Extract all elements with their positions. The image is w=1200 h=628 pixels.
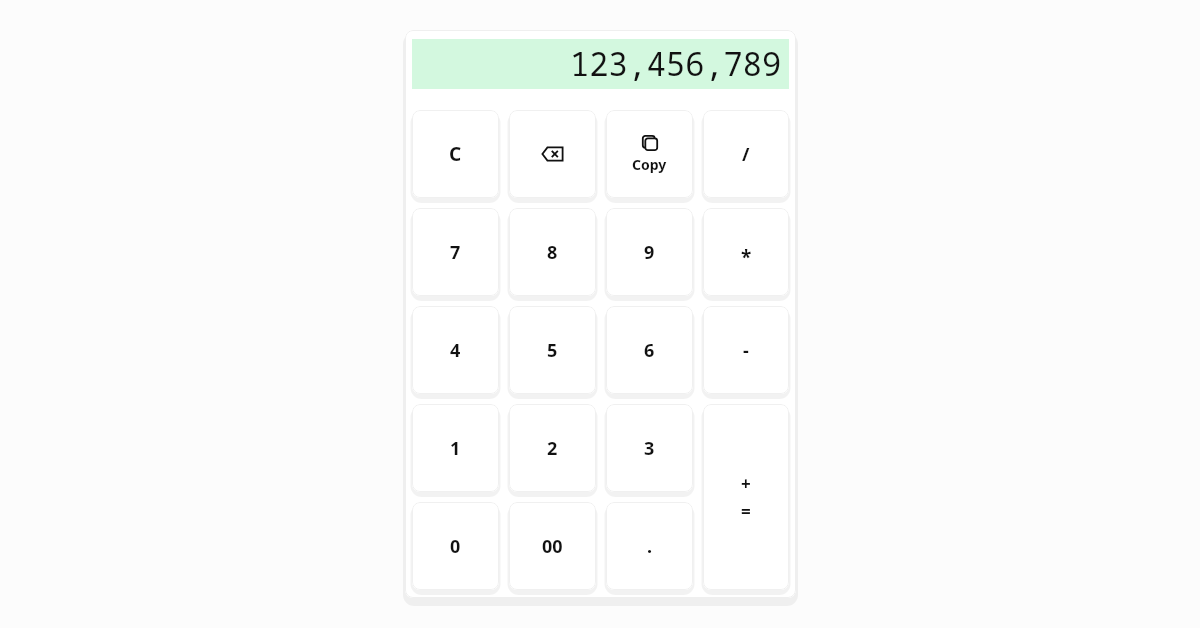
button[interactable]: . [606, 502, 693, 590]
button[interactable]: 7 [412, 208, 499, 296]
button[interactable]: 00 [509, 502, 596, 590]
button[interactable]: 2 [509, 404, 596, 492]
button[interactable]: C [412, 110, 499, 198]
button[interactable]: 8 [509, 208, 596, 296]
staticText: 6 [644, 338, 655, 363]
staticText: 2 [547, 436, 558, 461]
staticText: / [742, 142, 750, 167]
button[interactable]: + [703, 404, 789, 590]
staticText: 8 [547, 240, 558, 265]
button[interactable]: Copy [606, 110, 693, 198]
staticText: 9 [644, 240, 655, 265]
staticText: 00 [542, 534, 563, 559]
button[interactable]: 5 [509, 306, 596, 394]
staticText: 7 [450, 240, 461, 265]
button[interactable]: 1 [412, 404, 499, 492]
staticText: 3 [644, 436, 655, 461]
staticText: . [647, 534, 653, 559]
button[interactable]: Backspace [509, 110, 596, 198]
staticText: 4 [450, 338, 461, 363]
button[interactable]: - [703, 306, 789, 394]
button[interactable]: 3 [606, 404, 693, 492]
button[interactable]: 6 [606, 306, 693, 394]
button[interactable]: * [703, 208, 789, 296]
staticText: 5 [547, 338, 558, 363]
button[interactable]: 9 [606, 208, 693, 296]
staticText: C [449, 141, 462, 167]
staticText: * [741, 244, 752, 270]
button[interactable]: 0 [412, 502, 499, 590]
staticText: 123,456,789 [570, 42, 782, 86]
button[interactable]: 4 [412, 306, 499, 394]
button[interactable]: / [703, 110, 789, 198]
staticText: = [741, 500, 751, 523]
staticText: - [743, 338, 749, 363]
staticText: 0 [450, 534, 461, 559]
staticText: Copy [632, 155, 667, 174]
staticText: + [741, 472, 751, 495]
staticText: 1 [450, 436, 461, 461]
